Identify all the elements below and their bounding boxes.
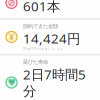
staticText: 14,424円 [23,30,80,47]
staticText: ⊘ [7,0,15,8]
staticText: ¥ [9,31,14,43]
staticText: 2日7時間5分 [23,65,86,99]
staticText: 節約できた金額 [23,23,58,30]
staticText: ※1箱600円で計算しています。 [23,47,66,51]
staticText: ♥ [7,77,15,88]
button[interactable]: ¥ [0,20,100,54]
staticText: 延びた寿命 [23,59,48,65]
button[interactable]: ⊘ [0,0,100,18]
button[interactable]: ♥ [0,56,100,100]
staticText: 601本 [23,0,60,15]
